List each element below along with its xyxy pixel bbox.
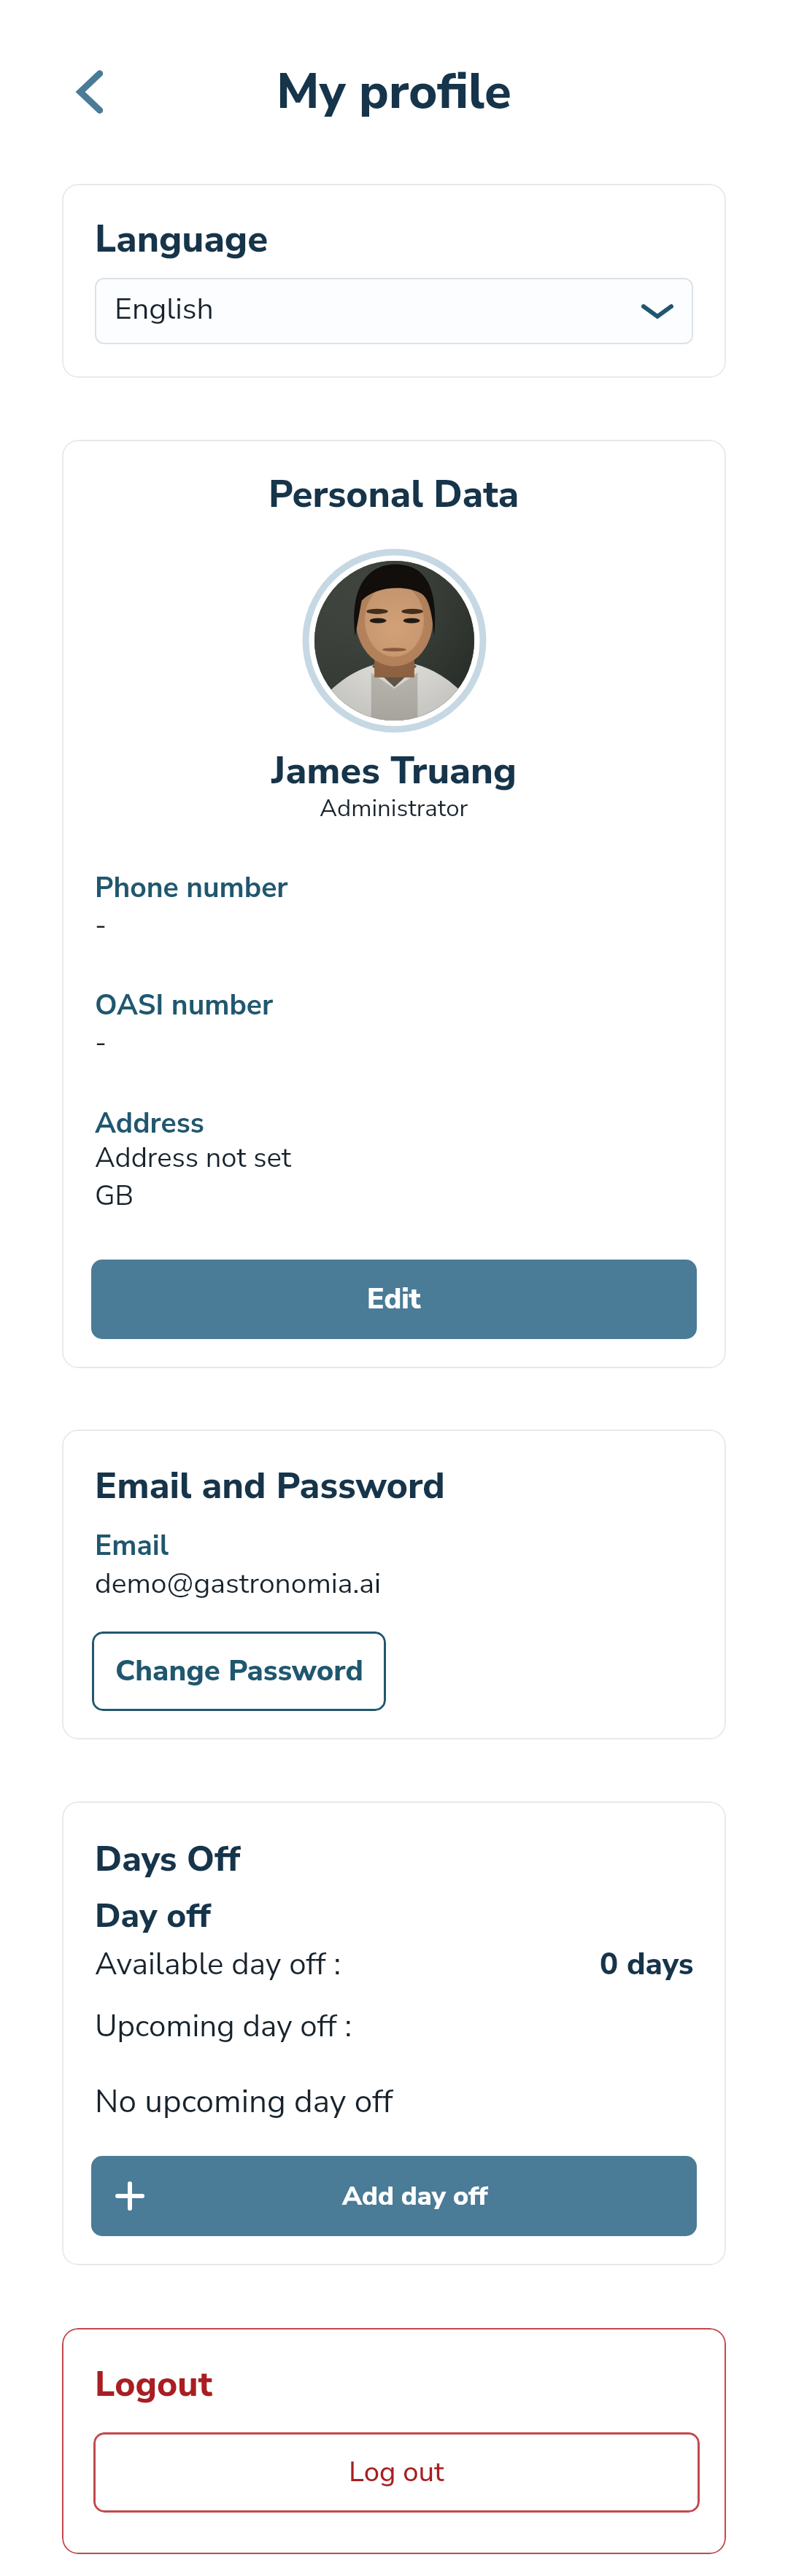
staticText: English	[115, 289, 214, 330]
staticText: Language	[95, 214, 269, 265]
staticText: Day off	[95, 1893, 212, 1939]
button[interactable]: Back	[60, 66, 112, 118]
staticText: Email	[95, 1526, 169, 1565]
staticText: -	[95, 907, 107, 944]
staticText: GB	[95, 1177, 134, 1215]
staticText: Days Off	[95, 1835, 241, 1882]
staticText: Logout	[95, 2360, 213, 2408]
staticText: OASI number	[95, 986, 274, 1025]
button[interactable]: English	[95, 278, 693, 344]
staticText: demo@gastronomia.ai	[95, 1564, 381, 1603]
staticText: 0 days	[600, 1944, 694, 1985]
staticText: Edit	[367, 1280, 421, 1319]
staticText: Upcoming day off :	[95, 2006, 352, 2047]
staticText: James Truang	[271, 745, 517, 796]
staticText: Email and Password	[95, 1461, 445, 1510]
staticText: Address not set	[95, 1139, 292, 1177]
staticText: Add day off	[342, 2179, 488, 2214]
staticText: -	[95, 1024, 107, 1062]
button[interactable]: Change Password	[92, 1632, 386, 1711]
staticText: Change Password	[115, 1651, 363, 1691]
button[interactable]: Log out	[93, 2432, 700, 2513]
staticText: Phone number	[95, 869, 288, 907]
staticText: Log out	[349, 2453, 444, 2491]
staticText: No upcoming day off	[95, 2080, 393, 2124]
staticText: Personal Data	[269, 469, 519, 520]
button[interactable]: Add day off	[91, 2156, 697, 2236]
staticText: Available day off :	[95, 1944, 341, 1985]
staticText: Administrator	[320, 792, 468, 825]
staticText: Address	[95, 1104, 204, 1143]
button[interactable]: Edit	[91, 1260, 697, 1339]
staticText: My profile	[277, 58, 511, 125]
